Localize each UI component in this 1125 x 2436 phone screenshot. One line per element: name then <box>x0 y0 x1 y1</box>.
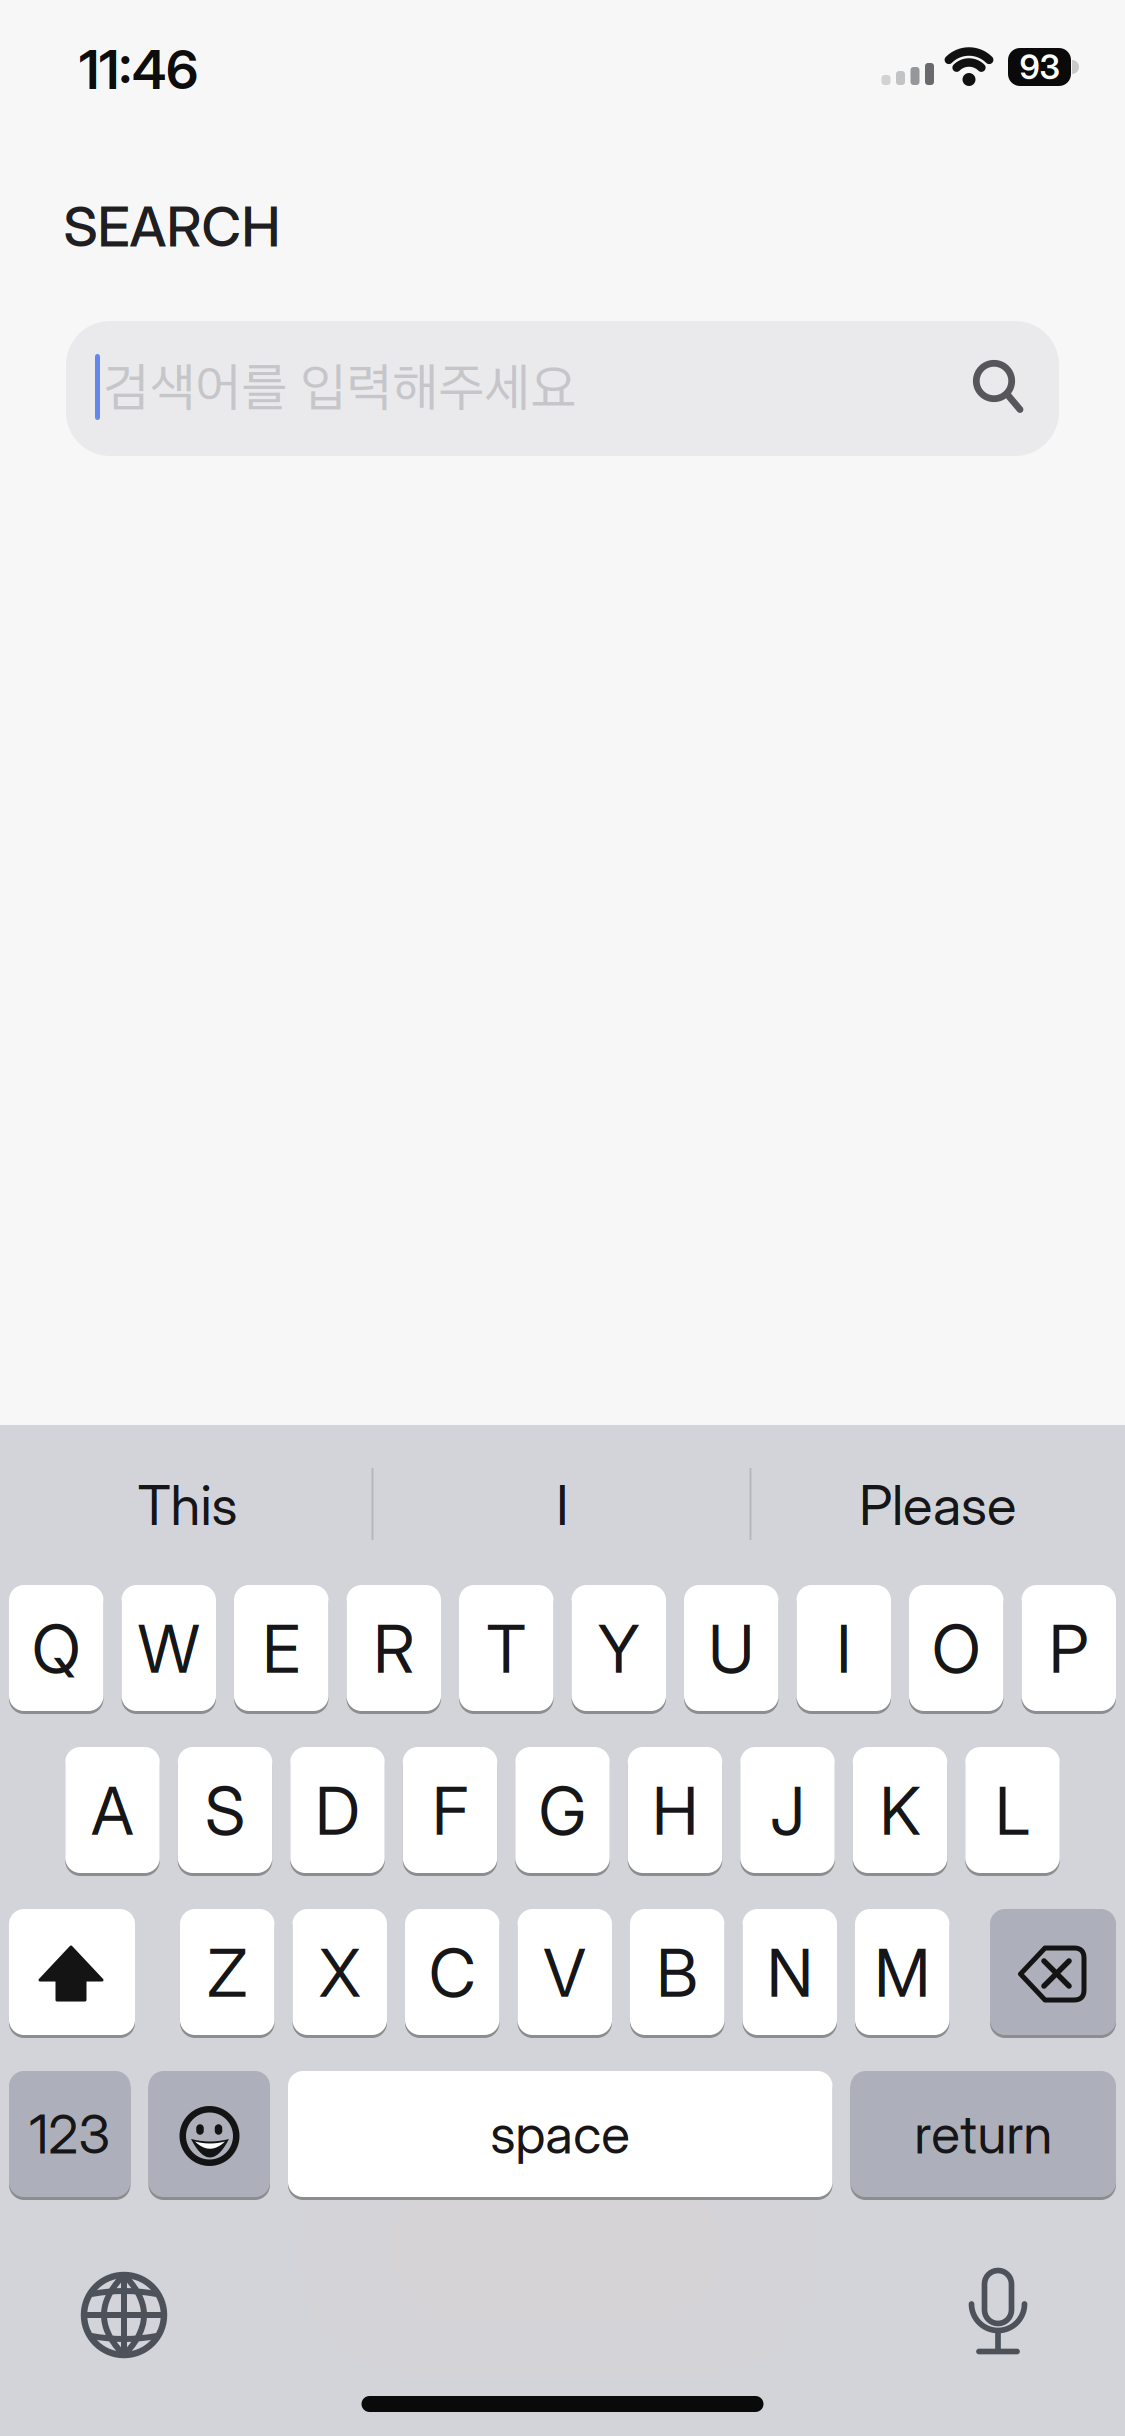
staticText: G <box>538 1772 586 1850</box>
staticText: I <box>556 1473 569 1537</box>
button[interactable]: X <box>292 1907 387 2036</box>
button[interactable]: space <box>288 2069 832 2198</box>
button[interactable]: P <box>1021 1583 1116 1712</box>
staticText: X <box>319 1934 361 2012</box>
staticText: Z <box>207 1934 247 2012</box>
button[interactable]: Please <box>859 1473 1016 1537</box>
button[interactable]: C <box>405 1907 499 2036</box>
staticText: A <box>91 1772 134 1850</box>
button[interactable]: B <box>630 1907 724 2036</box>
button[interactable]: return <box>850 2069 1116 2198</box>
staticText: 93 <box>1019 47 1059 87</box>
button[interactable]: U <box>684 1583 778 1712</box>
staticText: K <box>879 1772 920 1850</box>
button[interactable]: W <box>121 1583 216 1712</box>
button[interactable]: Next keyboard <box>0 0 1125 2436</box>
button[interactable]: V <box>517 1907 612 2036</box>
button[interactable]: I <box>556 1473 569 1537</box>
button[interactable]: Q <box>9 1583 103 1712</box>
button[interactable]: A <box>65 1745 160 1874</box>
staticText: P <box>1049 1610 1089 1688</box>
staticText: M <box>874 1934 930 2012</box>
button[interactable]: E <box>234 1583 328 1712</box>
staticText: 123 <box>29 2102 110 2165</box>
staticText: return <box>914 2102 1052 2165</box>
button[interactable]: 123 <box>9 2069 130 2198</box>
staticText: N <box>767 1934 813 2012</box>
staticText: 검색어를 입력해주세요 <box>103 355 576 419</box>
button[interactable]: Shift <box>0 0 1125 2436</box>
staticText: V <box>543 1934 586 2012</box>
staticText: E <box>262 1610 300 1688</box>
staticText: I <box>836 1610 851 1688</box>
button[interactable]: Dictation <box>0 0 1125 2436</box>
button[interactable]: Y <box>571 1583 666 1712</box>
staticText: D <box>315 1772 360 1850</box>
button[interactable]: H <box>628 1745 722 1874</box>
staticText: C <box>429 1934 476 2012</box>
staticText: L <box>995 1772 1030 1850</box>
staticText: R <box>373 1610 414 1688</box>
button[interactable]: G <box>515 1745 610 1874</box>
button[interactable]: S <box>178 1745 272 1874</box>
button[interactable]: N <box>742 1907 837 2036</box>
staticText: This <box>137 1473 237 1537</box>
staticText: O <box>932 1610 981 1688</box>
staticText: SEARCH <box>63 194 280 259</box>
button[interactable]: Z <box>180 1907 274 2036</box>
staticText: J <box>770 1772 805 1850</box>
button[interactable]: Emoji <box>0 0 1125 2436</box>
button[interactable]: T <box>459 1583 553 1712</box>
button[interactable]: F <box>403 1745 497 1874</box>
staticText: B <box>656 1934 698 2012</box>
button[interactable]: J <box>740 1745 835 1874</box>
button[interactable]: M <box>855 1907 949 2036</box>
staticText: W <box>138 1610 200 1688</box>
staticText: F <box>432 1772 468 1850</box>
staticText: T <box>486 1610 526 1688</box>
staticText: Q <box>32 1610 81 1688</box>
button[interactable]: This <box>137 1473 237 1537</box>
button[interactable]: R <box>346 1583 441 1712</box>
staticText: 11:46 <box>79 38 198 101</box>
staticText: Y <box>598 1610 640 1688</box>
staticText: S <box>205 1772 245 1850</box>
staticText: Please <box>859 1473 1016 1537</box>
staticText: space <box>490 2102 630 2165</box>
staticText: U <box>708 1610 754 1688</box>
button[interactable]: O <box>909 1583 1003 1712</box>
button[interactable]: L <box>965 1745 1060 1874</box>
button[interactable] <box>66 321 1059 456</box>
button[interactable]: D <box>290 1745 385 1874</box>
button[interactable]: K <box>853 1745 947 1874</box>
button[interactable]: Delete <box>0 0 1125 2436</box>
button[interactable]: I <box>796 1583 891 1712</box>
staticText: H <box>652 1772 698 1850</box>
